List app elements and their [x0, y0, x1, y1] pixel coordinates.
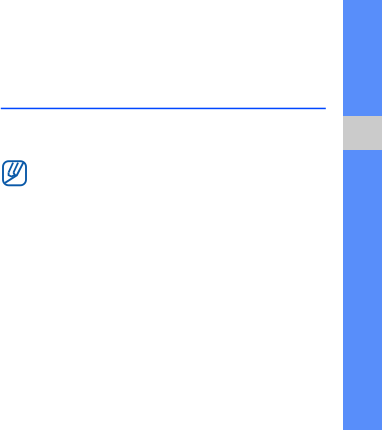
- button[interactable]: Note: [3, 161, 26, 185]
